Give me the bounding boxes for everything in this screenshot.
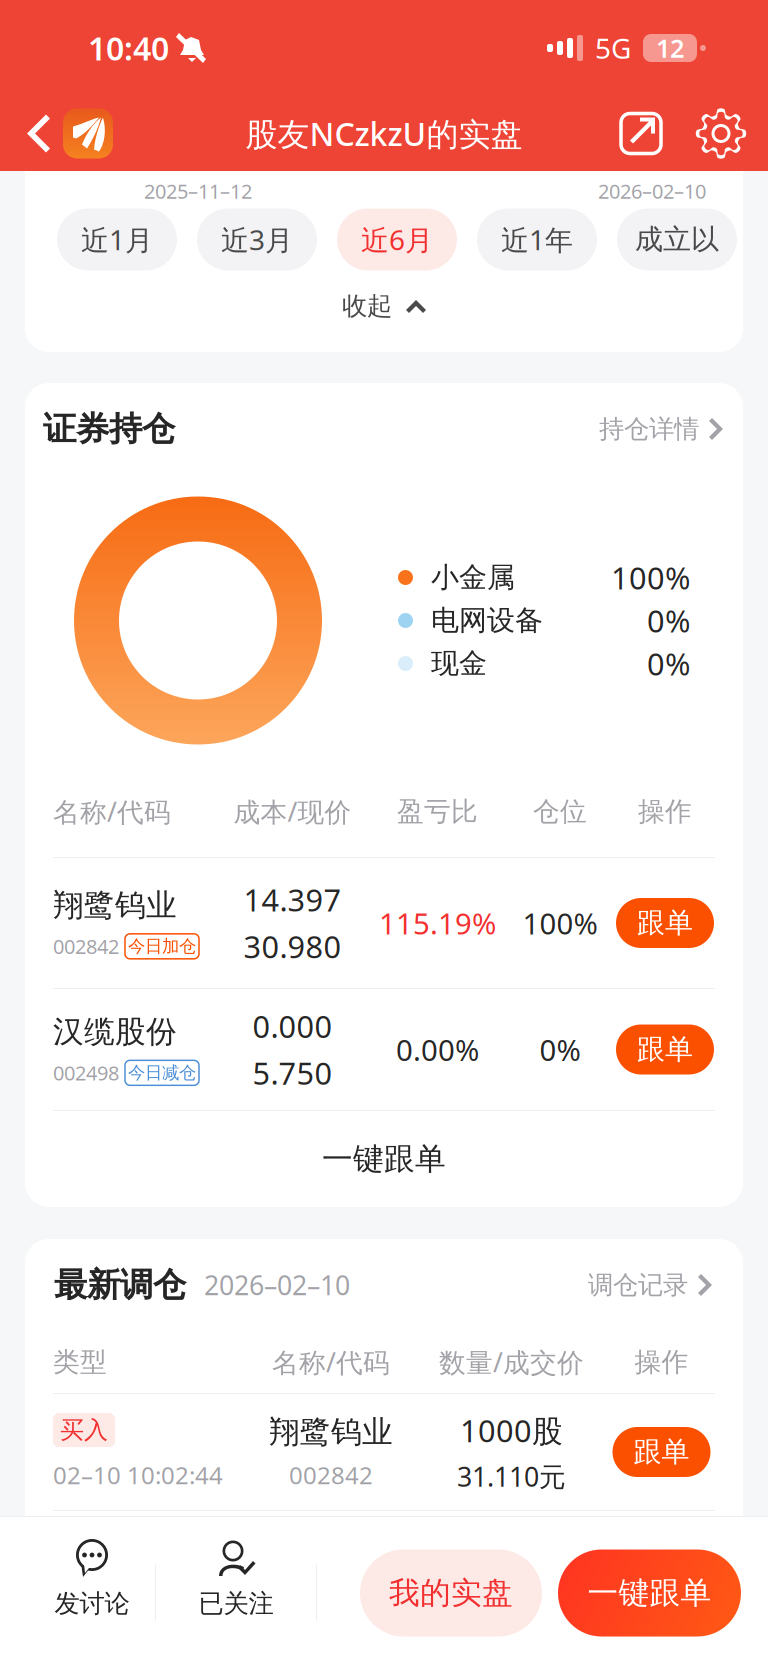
staticText: 02–10 10:02:44 [53,1459,223,1491]
staticText: 成本/现价 [233,794,351,829]
button[interactable]: 近6月 [337,208,457,270]
staticText: 盈亏比 [397,795,478,828]
button[interactable]: 一键跟单 [25,1111,743,1207]
staticText: 31.110元 [457,1459,566,1494]
button[interactable]: 收起 [342,288,428,324]
staticText: 名称/代码 [272,1344,390,1380]
button[interactable]: Back [16,101,60,165]
staticText: 10:40 [88,27,169,69]
staticText: 100% [611,557,690,598]
staticText: 跟单 [637,1032,693,1067]
button[interactable]: 跟单 [616,1024,714,1074]
staticText: 汉缆股份 [53,1013,177,1051]
staticText: 小金属 [431,560,515,595]
staticText: 现金 [431,646,487,681]
staticText: 115.19% [379,903,496,942]
button[interactable]: Settings [692,101,750,165]
staticText: 调仓记录 [588,1269,688,1300]
staticText: 名称/代码 [53,794,171,829]
staticText: 成立以 [635,222,719,257]
button[interactable]: Share [612,101,670,165]
staticText: 002498 [53,1060,119,1086]
button[interactable]: 近3月 [197,208,317,270]
staticText: 14.397 [243,879,341,920]
staticText: 今日加仓 [128,936,196,957]
staticText: 近6月 [361,221,433,258]
button[interactable]: 调仓记录 [588,1263,714,1307]
button[interactable]: 近1年 [477,208,597,270]
staticText: 类型 [53,1346,107,1378]
staticText: 股友NCzkzU的实盘 [245,112,522,155]
staticText: 5.750 [252,1052,332,1093]
button[interactable]: 成立以 [617,208,737,270]
staticText: 0% [647,600,690,641]
button[interactable]: 已关注 [156,1526,316,1660]
button[interactable]: 一键跟单 [558,1549,741,1636]
staticText: 买入 [60,1415,108,1445]
staticText: 收起 [342,290,392,321]
staticText: 100% [522,903,597,942]
button[interactable]: 我的实盘 [360,1549,542,1636]
staticText: 最新调仓 [54,1264,186,1305]
staticText: 翔鹭钨业 [53,886,177,924]
staticText: 数量/成交价 [439,1344,584,1380]
staticText: 0.00% [396,1030,479,1069]
staticText: 跟单 [633,1435,689,1469]
staticText: 持仓详情 [599,413,699,444]
staticText: 仓位 [533,795,587,828]
staticText: 0.000 [252,1006,332,1046]
staticText: 1000股 [460,1410,563,1451]
staticText: 5G [595,29,631,67]
button[interactable]: 持仓详情 [599,407,725,451]
staticText: 翔鹭钨业 [269,1413,393,1451]
staticText: 002842 [289,1459,373,1491]
staticText: 证券持仓 [43,408,175,449]
staticText: 今日减仓 [128,1062,196,1083]
staticText: 我的实盘 [389,1574,513,1612]
button[interactable]: 跟单 [612,1427,710,1477]
staticText: 跟单 [637,906,693,940]
staticText: 2026–02–10 [204,1267,350,1303]
button[interactable]: 跟单 [616,898,714,948]
staticText: 操作 [638,795,692,828]
staticText: 近1月 [81,221,153,258]
staticText: 一键跟单 [322,1140,446,1178]
staticText: 12 [656,31,684,65]
button[interactable]: 发讨论 [29,1526,155,1660]
staticText: 2026–02–10 [598,178,706,204]
staticText: 一键跟单 [587,1574,711,1612]
staticText: 近1年 [501,221,573,258]
staticText: 30.980 [243,926,341,967]
button[interactable]: 近1月 [57,208,177,270]
staticText: 发讨论 [54,1588,129,1619]
staticText: 0% [647,643,690,684]
staticText: 近3月 [221,221,293,258]
staticText: 电网设备 [431,603,543,638]
staticText: 操作 [634,1346,688,1378]
staticText: 2025–11–12 [144,178,252,204]
staticText: 已关注 [198,1588,273,1619]
staticText: 0% [539,1030,580,1069]
staticText: 002842 [53,933,119,960]
